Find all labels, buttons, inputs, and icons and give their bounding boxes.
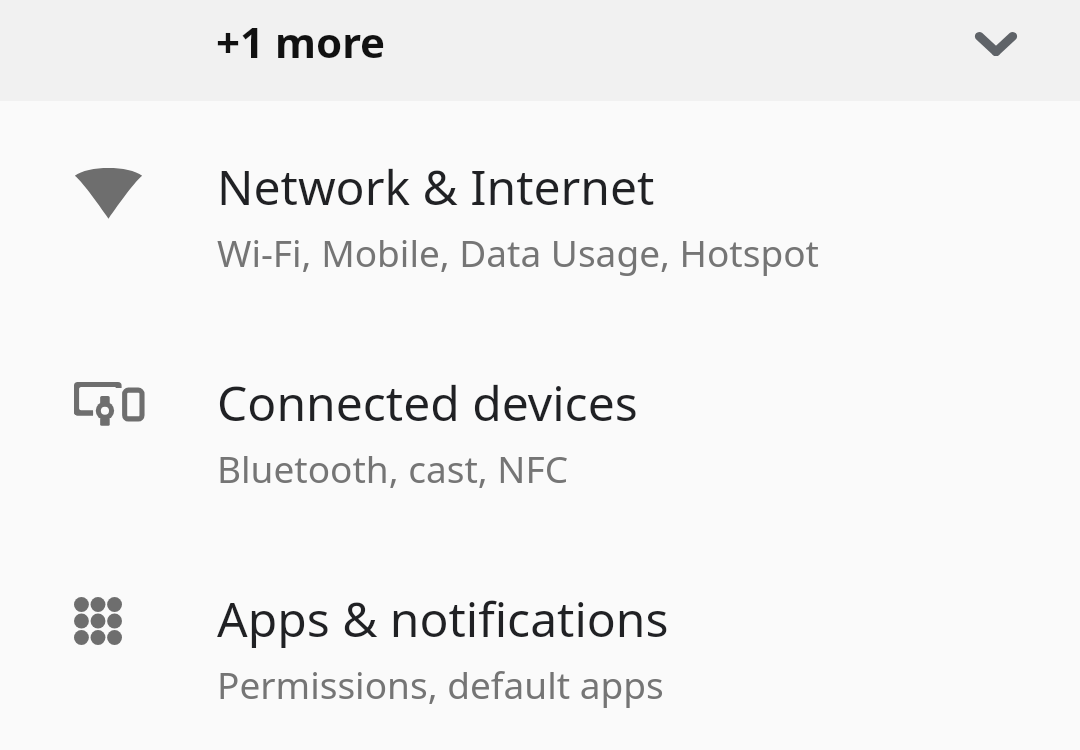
staticText: Bluetooth, cast, NFC	[217, 443, 569, 493]
button[interactable]: +1 more	[0, 0, 1080, 101]
other: Network and Internet	[74, 165, 143, 219]
other: Connected devices	[74, 381, 142, 429]
staticText: Wi-Fi, Mobile, Data Usage, Hotspot	[217, 227, 819, 277]
staticText: +1 more	[216, 13, 386, 70]
staticText: Permissions, default apps	[217, 659, 664, 709]
button[interactable]: Connected devices	[0, 317, 1080, 533]
staticText: Apps & notifications	[217, 586, 669, 651]
staticText: Network & Internet	[217, 154, 655, 219]
button[interactable]: Network and Internet	[0, 101, 1080, 317]
other: Expand	[960, 8, 1032, 80]
staticText: Connected devices	[217, 370, 638, 435]
button[interactable]: Apps and notifications	[0, 533, 1080, 749]
other: Apps and notifications	[74, 597, 122, 645]
